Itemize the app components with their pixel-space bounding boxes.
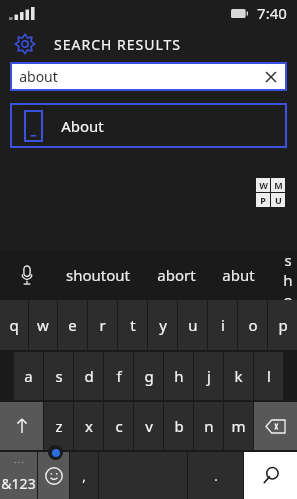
button[interactable]: v [134, 402, 163, 450]
staticText: a [24, 366, 33, 386]
button[interactable]: z [44, 402, 73, 450]
staticText: abort [157, 265, 196, 285]
button[interactable]: q [0, 300, 28, 350]
button[interactable]: w [29, 300, 57, 350]
button[interactable]: Settings [10, 29, 40, 59]
button[interactable]: s [44, 352, 73, 400]
button[interactable]: . [188, 452, 243, 499]
staticText: abut [222, 265, 255, 285]
staticText: z [55, 416, 63, 436]
button[interactable]: Backspace [254, 402, 297, 450]
staticText: , [82, 467, 86, 485]
staticText: about [19, 67, 58, 86]
staticText: k [234, 366, 243, 386]
button[interactable]: l [254, 352, 283, 400]
button[interactable]: x [74, 402, 103, 450]
staticText: About [61, 116, 104, 136]
staticText: c [115, 416, 123, 436]
button[interactable]: u [178, 300, 207, 350]
button[interactable]: n [194, 402, 223, 450]
staticText: o [248, 315, 258, 335]
button[interactable]: t [118, 300, 147, 350]
button[interactable]: k [224, 352, 253, 400]
button[interactable]: about [10, 62, 287, 91]
staticText: r [99, 315, 106, 335]
staticText: &123 [1, 474, 36, 493]
staticText: . [214, 467, 218, 485]
staticText: U [275, 194, 282, 206]
button[interactable]: shout [279, 250, 297, 300]
staticText: y [159, 315, 167, 335]
button[interactable]: abut [220, 265, 257, 285]
button[interactable]: a [14, 352, 43, 400]
staticText: d [84, 366, 94, 386]
button[interactable]: c [104, 402, 133, 450]
button[interactable]: b [164, 402, 193, 450]
button[interactable]: Emoji [38, 452, 69, 499]
staticText: e [68, 315, 77, 335]
button[interactable]: shoutout [64, 265, 132, 285]
staticText: i [221, 315, 225, 335]
button[interactable]: h [164, 352, 193, 400]
button[interactable]: , [70, 452, 98, 499]
staticText: s [55, 366, 63, 386]
staticText: P [260, 194, 266, 206]
button[interactable]: e [58, 300, 87, 350]
staticText: b [174, 416, 184, 436]
staticText: t [130, 315, 136, 335]
staticText: x [85, 416, 93, 436]
button[interactable]: d [74, 352, 103, 400]
staticText: u [188, 315, 198, 335]
button[interactable]: j [194, 352, 223, 400]
button[interactable]: Clear [262, 68, 280, 86]
button[interactable]: o [238, 300, 267, 350]
staticText: W [259, 179, 268, 191]
staticText: SEARCH RESULTS [54, 35, 181, 54]
staticText: v [145, 416, 153, 436]
button[interactable]: i [208, 300, 237, 350]
staticText: · · · [14, 458, 24, 468]
staticText: q [9, 315, 19, 335]
staticText: l [267, 366, 271, 386]
button[interactable]: Search [244, 452, 297, 499]
button[interactable]: f [104, 352, 133, 400]
button[interactable]: abort [155, 265, 198, 285]
staticText: j [207, 366, 211, 386]
button[interactable]: About [10, 103, 287, 148]
staticText: g [144, 366, 154, 386]
staticText: 7:40 [257, 3, 287, 23]
staticText: shoutout [66, 265, 130, 285]
button[interactable]: y [148, 300, 177, 350]
staticText: M [274, 179, 283, 191]
staticText: p [278, 315, 288, 335]
button[interactable]: r [88, 300, 117, 350]
staticText: h [174, 366, 184, 386]
button[interactable]: g [134, 352, 163, 400]
staticText: f [116, 366, 122, 386]
button[interactable]: · · · [0, 452, 37, 499]
button[interactable]: m [224, 402, 253, 450]
staticText: shout [281, 250, 295, 300]
staticText: n [204, 416, 214, 436]
staticText: m [231, 416, 246, 436]
button[interactable]: p [268, 300, 297, 350]
button[interactable]: Voice input [14, 262, 40, 288]
staticText: w [37, 315, 49, 335]
button[interactable]: Shift [0, 402, 43, 450]
